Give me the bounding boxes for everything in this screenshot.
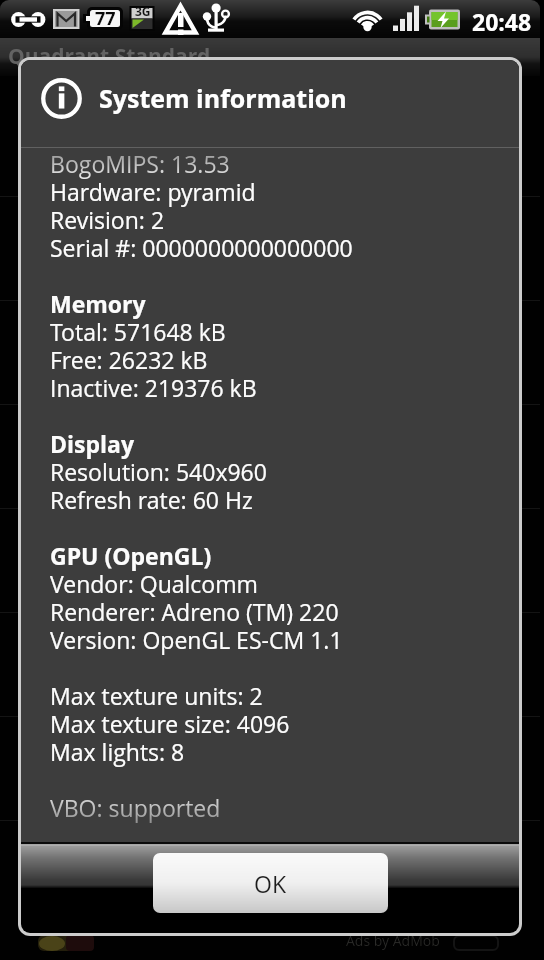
staticText: Refresh rate: 60 Hz bbox=[50, 484, 253, 515]
staticText: Free: 26232 kB bbox=[50, 344, 208, 375]
staticText: Display bbox=[50, 428, 135, 459]
staticText: Ads by AdMob bbox=[346, 931, 440, 950]
staticText: Hardware: pyramid bbox=[50, 176, 256, 207]
staticText: VBO: supported bbox=[50, 792, 221, 823]
staticText: 77 bbox=[95, 6, 116, 31]
staticText: 3G bbox=[135, 3, 151, 19]
staticText: Memory bbox=[50, 288, 146, 319]
staticText: System information bbox=[99, 81, 347, 115]
staticText: Max lights: 8 bbox=[50, 736, 185, 767]
staticText: Quadrant Standard bbox=[8, 42, 211, 71]
staticText: Renderer: Adreno (TM) 220 bbox=[50, 596, 339, 627]
staticText: Version: OpenGL ES-CM 1.1 bbox=[50, 624, 343, 655]
other: Information bbox=[41, 78, 82, 119]
staticText: GPU (OpenGL) bbox=[50, 540, 212, 571]
staticText: Serial #: 0000000000000000 bbox=[50, 232, 353, 263]
staticText: Max texture size: 4096 bbox=[50, 708, 290, 739]
staticText: Total: 571648 kB bbox=[50, 316, 226, 347]
staticText: 20:48 bbox=[472, 6, 532, 37]
staticText: Resolution: 540x960 bbox=[50, 456, 267, 487]
staticText: Inactive: 219376 kB bbox=[50, 372, 257, 403]
staticText: Vendor: Qualcomm bbox=[50, 568, 258, 599]
button[interactable]: OK bbox=[153, 853, 388, 913]
staticText: OK bbox=[254, 868, 287, 899]
staticText: Max texture units: 2 bbox=[50, 680, 263, 711]
staticText: BogoMIPS: 13.53 bbox=[50, 148, 230, 179]
staticText: Revision: 2 bbox=[50, 204, 165, 235]
